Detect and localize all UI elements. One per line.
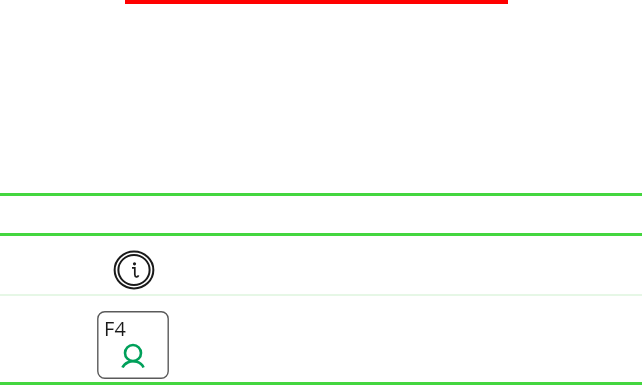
button[interactable]: F4 <box>97 311 169 379</box>
staticText: F4 <box>104 315 169 342</box>
button[interactable]: Information <box>112 250 156 290</box>
